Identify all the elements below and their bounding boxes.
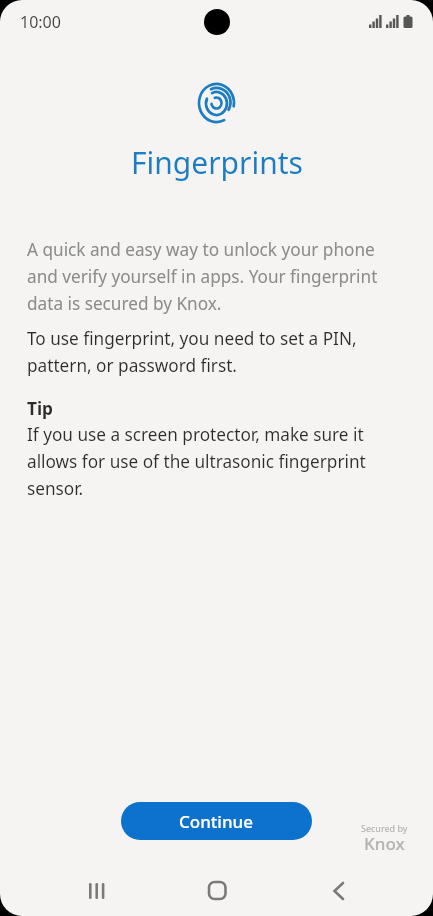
button[interactable] bbox=[324, 875, 352, 903]
button[interactable] bbox=[86, 875, 114, 903]
staticText: To use fingerprint, you need to set a PI… bbox=[27, 327, 357, 377]
staticText: Tip bbox=[27, 397, 53, 420]
staticText: Secured by bbox=[361, 822, 408, 834]
staticText: If you use a screen protector, make sure… bbox=[27, 423, 366, 500]
staticText: Continue bbox=[179, 810, 254, 833]
button[interactable] bbox=[203, 875, 231, 903]
staticText: Knox bbox=[364, 832, 405, 855]
staticText: Fingerprints bbox=[131, 142, 303, 183]
staticText: 10:00 bbox=[20, 11, 61, 33]
button[interactable]: Continue bbox=[121, 802, 312, 840]
staticText: A quick and easy way to unlock your phon… bbox=[27, 238, 378, 315]
